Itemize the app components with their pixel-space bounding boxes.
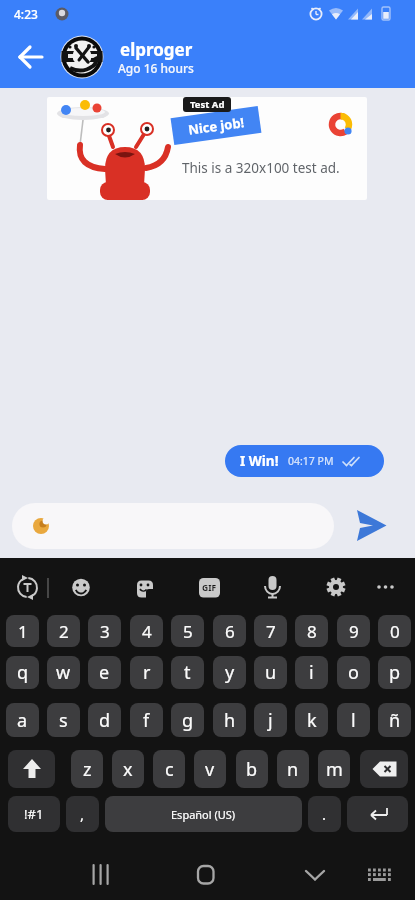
button[interactable]: p — [378, 656, 411, 689]
staticText: , — [80, 804, 85, 824]
staticText: 7 — [266, 620, 276, 643]
button[interactable] — [12, 503, 334, 549]
button[interactable] — [344, 503, 396, 549]
staticText: 6 — [225, 620, 235, 643]
button[interactable] — [6, 33, 54, 81]
button[interactable]: I Win! — [225, 445, 384, 477]
button[interactable]: k — [295, 703, 328, 737]
staticText: 9 — [349, 620, 359, 643]
staticText: ñ — [389, 708, 401, 733]
button[interactable]: 3 — [88, 615, 121, 647]
staticText: 0 — [390, 620, 400, 643]
staticText: y — [225, 660, 235, 685]
button[interactable]: 7 — [254, 615, 287, 647]
staticText: p — [389, 660, 401, 685]
button[interactable]: 6 — [213, 615, 246, 647]
staticText: b — [246, 757, 258, 782]
staticText: i — [309, 660, 314, 685]
staticText: u — [265, 660, 277, 685]
button[interactable] — [347, 796, 408, 832]
button[interactable]: , — [66, 796, 99, 832]
staticText: 2 — [59, 620, 69, 643]
staticText: s — [59, 708, 68, 733]
staticText: 8 — [307, 620, 317, 643]
staticText: I Win! — [240, 452, 279, 470]
staticText: c — [165, 757, 174, 782]
button[interactable]: 0 — [378, 615, 411, 647]
staticText: t — [184, 660, 191, 685]
staticText: q — [17, 660, 29, 685]
staticText: 1 — [18, 620, 28, 643]
staticText: k — [307, 708, 317, 733]
staticText: v — [205, 757, 215, 782]
staticText: 04:17 PM — [288, 454, 334, 468]
staticText: Test Ad — [190, 98, 225, 111]
button[interactable]: ñ — [378, 703, 411, 737]
button[interactable]: x — [112, 750, 144, 788]
button[interactable]: d — [88, 703, 121, 737]
button[interactable]: j — [254, 703, 287, 737]
staticText: e — [99, 660, 110, 685]
staticText: . — [322, 804, 327, 824]
button[interactable]: l — [337, 703, 370, 737]
staticText: 4:23 — [14, 6, 38, 22]
button[interactable]: g — [171, 703, 204, 737]
button[interactable]: . — [308, 796, 341, 832]
staticText: 5 — [183, 620, 193, 643]
button[interactable]: w — [47, 656, 80, 689]
button[interactable]: Nice job! — [47, 97, 367, 200]
staticText: l — [351, 708, 356, 733]
staticText: d — [99, 708, 111, 733]
button[interactable]: n — [277, 750, 309, 788]
button[interactable]: m — [318, 750, 350, 788]
button[interactable]: r — [130, 656, 163, 689]
button[interactable]: y — [213, 656, 246, 689]
button[interactable]: a — [6, 703, 39, 737]
staticText: f — [143, 708, 150, 733]
button[interactable] — [360, 750, 408, 788]
staticText: 3 — [100, 620, 110, 643]
button[interactable]: u — [254, 656, 287, 689]
staticText: elproger — [120, 38, 193, 61]
button[interactable]: 9 — [337, 615, 370, 647]
staticText: w — [56, 660, 71, 685]
button[interactable] — [8, 750, 55, 788]
staticText: j — [268, 708, 273, 733]
button[interactable]: s — [47, 703, 80, 737]
button[interactable]: o — [337, 656, 370, 689]
staticText: a — [17, 708, 28, 733]
button[interactable]: 5 — [171, 615, 204, 647]
button[interactable]: h — [213, 703, 246, 737]
button[interactable]: t — [171, 656, 204, 689]
button[interactable]: v — [194, 750, 226, 788]
staticText: n — [287, 757, 299, 782]
button[interactable]: 2 — [47, 615, 80, 647]
button[interactable]: z — [71, 750, 103, 788]
button[interactable]: f — [130, 703, 163, 737]
staticText: h — [224, 708, 236, 733]
button[interactable]: !#1 — [8, 796, 60, 832]
button[interactable]: e — [88, 656, 121, 689]
button[interactable]: 8 — [295, 615, 328, 647]
button[interactable]: i — [295, 656, 328, 689]
staticText: z — [83, 757, 92, 782]
staticText: r — [143, 660, 151, 685]
staticText: 4 — [142, 620, 152, 643]
staticText: GIF — [202, 582, 217, 594]
staticText: x — [123, 757, 133, 782]
button[interactable]: b — [236, 750, 268, 788]
button[interactable]: Español (US) — [105, 796, 302, 832]
button[interactable]: 1 — [6, 615, 39, 647]
staticText: Nice job! — [187, 113, 246, 139]
staticText: Español (US) — [171, 807, 236, 822]
button[interactable]: c — [153, 750, 185, 788]
staticText: Ago 16 hours — [118, 60, 194, 76]
staticText: o — [348, 660, 359, 685]
button[interactable]: 4 — [130, 615, 163, 647]
staticText: This is a 320x100 test ad. — [182, 159, 340, 177]
staticText: g — [182, 708, 194, 733]
staticText: m — [326, 757, 343, 782]
staticText: !#1 — [24, 805, 44, 823]
button[interactable]: q — [6, 656, 39, 689]
